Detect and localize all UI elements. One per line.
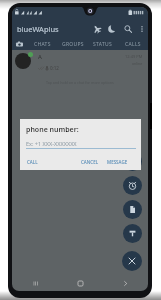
button[interactable]: Contact: [123, 152, 142, 171]
button[interactable]: Recents: [12, 276, 58, 291]
button[interactable]: Document: [123, 200, 142, 219]
staticText: blueWAplus: [17, 24, 59, 34]
button[interactable]: Camera: [12, 38, 27, 50]
staticText: CALL: [27, 159, 38, 165]
staticText: 12:49 PM: [125, 54, 143, 59]
button[interactable]: CALLS: [118, 38, 148, 50]
staticText: GROUPS: [62, 41, 84, 48]
button[interactable]: MESSAGE: [106, 158, 129, 166]
button[interactable]: More options: [136, 20, 148, 38]
button[interactable]: GROUPS: [58, 38, 88, 50]
staticText: CANCEL: [81, 159, 99, 165]
staticText: A: [38, 53, 42, 61]
button[interactable]: CALL: [26, 158, 39, 166]
button[interactable]: CHATS: [27, 38, 58, 50]
button[interactable]: Night mode: [104, 20, 120, 38]
button[interactable]: STATUS: [88, 38, 118, 50]
staticText: phone number:: [26, 125, 79, 135]
staticText: CALLS: [125, 41, 141, 48]
button[interactable]: CANCEL: [80, 158, 100, 166]
staticText: Tap and hold on a chat for more options: [46, 80, 114, 85]
staticText: online: [132, 61, 143, 66]
button[interactable]: Back: [103, 276, 148, 291]
staticText: 0:12: [50, 65, 59, 71]
staticText: STATUS: [93, 41, 113, 48]
button[interactable]: Airplane mode: [90, 20, 104, 38]
button[interactable]: Broadcast: [123, 224, 142, 243]
staticText: MESSAGE: [107, 159, 128, 165]
button[interactable]: Alarm: [123, 176, 142, 195]
button[interactable]: Home: [58, 276, 103, 291]
button[interactable]: Search: [120, 20, 136, 38]
staticText: Ex: +1 XXX-XXXXXXX: [26, 140, 77, 147]
staticText: CHATS: [34, 41, 51, 48]
button[interactable]: Close: [122, 251, 142, 271]
